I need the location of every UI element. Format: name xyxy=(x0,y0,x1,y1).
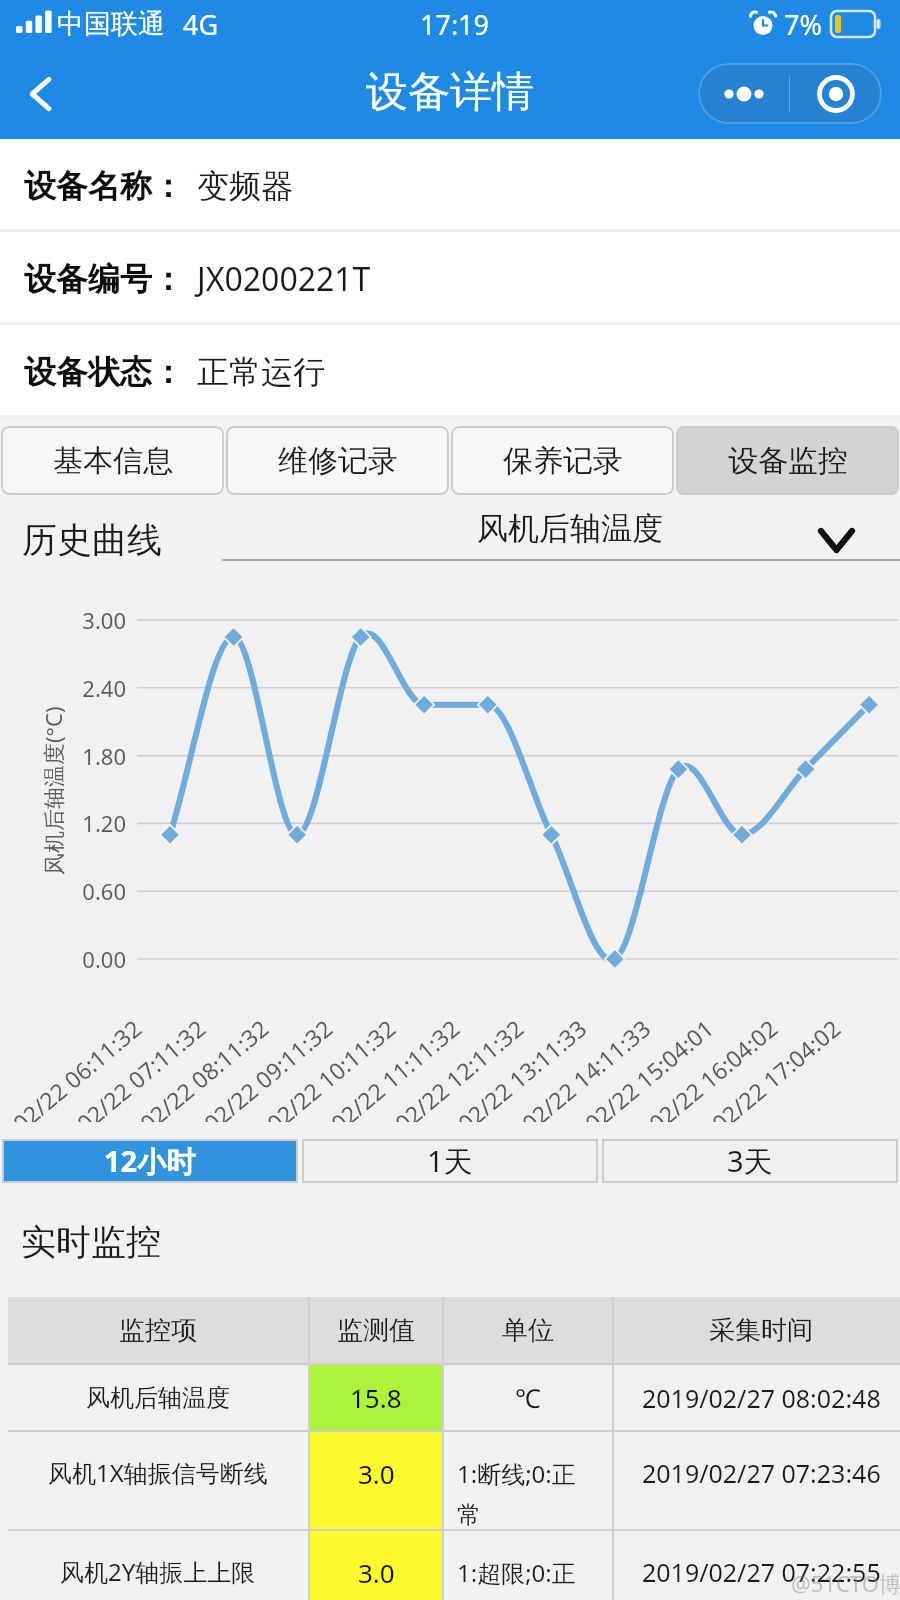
staticText: 风机后轴温度 xyxy=(477,509,663,548)
button[interactable]: 12小时 xyxy=(2,1139,298,1183)
staticText: 02/22 17:04:02 xyxy=(705,1012,846,1122)
staticText: 单位 xyxy=(502,1314,554,1347)
button[interactable]: 设备名称： xyxy=(0,139,900,232)
staticText: 2019/02/27 07:22:55 xyxy=(642,1555,881,1589)
staticText: 02/22 12:11:32 xyxy=(388,1012,529,1122)
button[interactable]: 风机后轴温度 xyxy=(8,1365,900,1430)
button[interactable]: 风机1X轴振信号断线 xyxy=(8,1432,900,1529)
staticText: 风机1X轴振信号断线 xyxy=(48,1456,268,1489)
staticText: 02/22 11:11:32 xyxy=(324,1012,465,1122)
staticText: ℃ xyxy=(515,1380,541,1415)
button[interactable]: 设备状态： xyxy=(0,325,900,418)
staticText: 0.60 xyxy=(82,876,126,906)
staticText: 12小时 xyxy=(104,1141,196,1181)
staticText: 15.8 xyxy=(350,1380,402,1415)
staticText: 实时监控 xyxy=(21,1220,161,1264)
staticText: 2019/02/27 07:23:46 xyxy=(642,1456,881,1490)
staticText: 4G xyxy=(183,6,219,43)
button[interactable]: 设备编号： xyxy=(0,232,900,325)
staticText: 维修记录 xyxy=(278,442,398,480)
staticText: 02/22 10:11:32 xyxy=(260,1012,401,1122)
staticText: 02/22 16:04:02 xyxy=(642,1012,783,1122)
staticText: 3.0 xyxy=(358,1555,395,1590)
button[interactable]: 风机2Y轴振上上限 xyxy=(8,1531,900,1600)
staticText: 中国联通 xyxy=(57,7,165,41)
staticText: 02/22 09:11:32 xyxy=(197,1012,338,1122)
staticText: 3.0 xyxy=(358,1456,395,1491)
staticText: 采集时间 xyxy=(709,1314,813,1347)
staticText: 监测值 xyxy=(337,1314,415,1347)
staticText: 风机2Y轴振上上限 xyxy=(60,1555,256,1588)
staticText: 1:超限;0:正常 xyxy=(457,1556,579,1600)
staticText: 02/22 13:11:33 xyxy=(451,1012,592,1122)
staticText: 基本信息 xyxy=(53,442,173,480)
staticText: 3.00 xyxy=(82,605,126,635)
staticText: 02/22 07:11:32 xyxy=(70,1012,211,1122)
staticText: 设备监控 xyxy=(728,442,848,480)
staticText: 2.40 xyxy=(82,673,126,703)
staticText: 正常运行 xyxy=(197,352,325,392)
button[interactable]: 返回 xyxy=(8,61,74,127)
button[interactable]: 设备监控 xyxy=(676,426,899,495)
staticText: 风机后轴温度 xyxy=(86,1383,230,1413)
staticText: 02/22 08:11:32 xyxy=(133,1012,274,1122)
staticText: 设备编号： xyxy=(24,259,184,299)
button[interactable]: 基本信息 xyxy=(1,426,224,495)
staticText: 历史曲线 xyxy=(22,518,162,562)
staticText: 1天 xyxy=(427,1141,473,1181)
staticText: 1.20 xyxy=(82,808,126,838)
staticText: @51CTO博客 xyxy=(791,1568,900,1598)
button[interactable]: 1天 xyxy=(302,1139,598,1183)
staticText: 02/22 15:04:01 xyxy=(578,1012,719,1122)
button[interactable]: 关闭 xyxy=(790,63,882,124)
staticText: 2019/02/27 08:02:48 xyxy=(642,1381,881,1415)
staticText: 3天 xyxy=(727,1141,773,1181)
staticText: 设备状态： xyxy=(24,352,184,392)
staticText: JX0200221T xyxy=(197,257,371,301)
staticText: 17:19 xyxy=(420,6,490,43)
staticText: 设备名称： xyxy=(24,166,184,206)
staticText: 设备详情 xyxy=(366,66,534,119)
staticText: 1:断线;0:正常 xyxy=(457,1457,579,1530)
button[interactable]: 风机后轴温度 xyxy=(222,500,900,561)
staticText: 7% xyxy=(784,6,822,43)
button[interactable]: 更多 xyxy=(698,63,789,124)
staticText: 02/22 06:11:32 xyxy=(6,1012,147,1122)
staticText: 1.80 xyxy=(82,741,126,771)
button[interactable]: 保养记录 xyxy=(451,426,674,495)
staticText: 风机后轴温度(°C) xyxy=(38,706,68,875)
staticText: 0.00 xyxy=(82,944,126,974)
staticText: 变频器 xyxy=(197,166,293,206)
staticText: 02/22 14:11:33 xyxy=(515,1012,656,1122)
staticText: 监控项 xyxy=(119,1314,197,1347)
button[interactable]: 3天 xyxy=(602,1139,898,1183)
staticText: 保养记录 xyxy=(503,442,623,480)
button[interactable]: 维修记录 xyxy=(226,426,449,495)
